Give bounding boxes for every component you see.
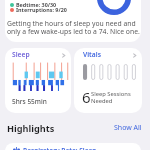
staticText: Respiratory Rate: Sleep <box>23 146 97 150</box>
other: Open Vitals details <box>131 52 138 59</box>
button[interactable]: Vitals <box>74 48 142 113</box>
staticText: Vitals <box>83 50 101 59</box>
staticText: Show All <box>114 123 142 133</box>
staticText: Sleep <box>12 50 30 59</box>
button[interactable]: Sleep <box>5 48 71 113</box>
staticText: 6 <box>82 87 91 107</box>
staticText: Bedtime: 30/30 <box>16 1 57 8</box>
button[interactable]: Bedtime: 30/30 <box>5 0 141 42</box>
other: Open Sleep details <box>60 52 67 59</box>
staticText: Sleep Sessions Needed <box>91 90 131 105</box>
staticText: Interruptions: 9/20 <box>16 6 67 13</box>
button[interactable]: Respiratory Rate: Sleep <box>5 143 141 150</box>
button[interactable]: Show All <box>114 123 142 133</box>
staticText: 5hrs 55min <box>12 97 47 106</box>
staticText: Highlights <box>7 122 55 135</box>
staticText: Getting the hours of sleep you need and … <box>7 19 140 36</box>
